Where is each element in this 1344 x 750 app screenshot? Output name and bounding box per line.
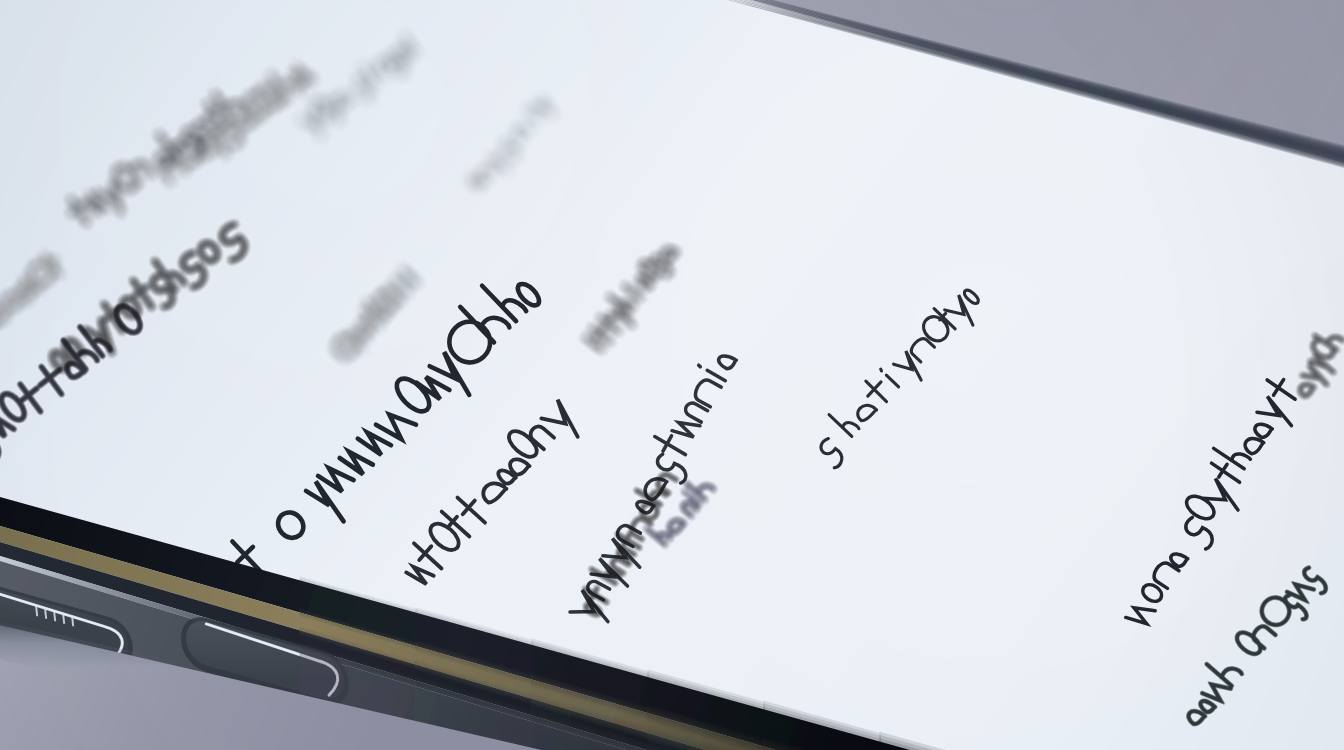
button[interactable]: Handwritten note displayed on a phone (0, 0, 1344, 750)
